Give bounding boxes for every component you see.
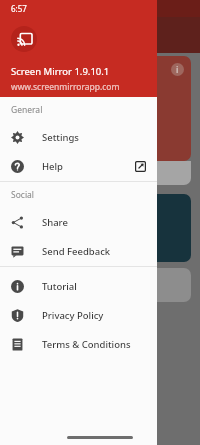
staticText: i	[176, 64, 179, 75]
button[interactable]: Tutorial	[0, 272, 157, 301]
staticText: www.screenmirrorapp.com	[11, 81, 120, 93]
staticText: Screen Mirroring	[19, 167, 91, 179]
staticText: General	[11, 104, 43, 116]
button[interactable]	[9, 194, 191, 262]
button[interactable]: Info	[9, 56, 191, 161]
button[interactable]: Send Feedback	[0, 237, 157, 266]
button[interactable]: Terms & Conditions	[0, 330, 157, 359]
button[interactable]: Privacy Policy	[0, 301, 157, 330]
staticText: Screen Mirror 1.9.10.1	[11, 65, 110, 78]
button[interactable]: Info	[171, 63, 184, 76]
staticText: Social	[11, 189, 35, 201]
button[interactable]: Share	[0, 208, 157, 237]
button[interactable]: Settings	[0, 123, 157, 152]
staticText: Privacy Policy	[42, 309, 104, 322]
staticText: Tutorial	[42, 280, 77, 293]
staticText: Send Feedback	[42, 245, 111, 258]
staticText: Settings	[42, 131, 79, 144]
staticText: Help	[42, 160, 64, 173]
staticText: Terms & Conditions	[42, 338, 131, 351]
button[interactable]: Help	[0, 152, 157, 181]
staticText: Share	[42, 216, 68, 229]
staticText: 6:57	[11, 3, 27, 14]
